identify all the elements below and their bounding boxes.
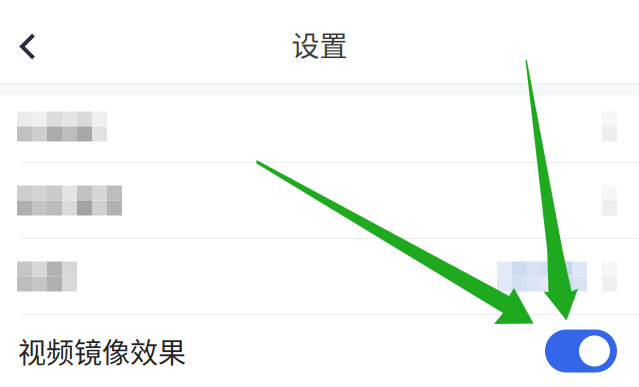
button[interactable]: Back: [0, 14, 54, 68]
button[interactable]: [0, 239, 639, 314]
button[interactable]: 视频镜像效果: [0, 315, 639, 387]
button[interactable]: [0, 95, 639, 162]
staticText: 视频镜像效果: [18, 331, 186, 371]
staticText: 设置: [291, 24, 347, 64]
button[interactable]: [0, 163, 639, 238]
